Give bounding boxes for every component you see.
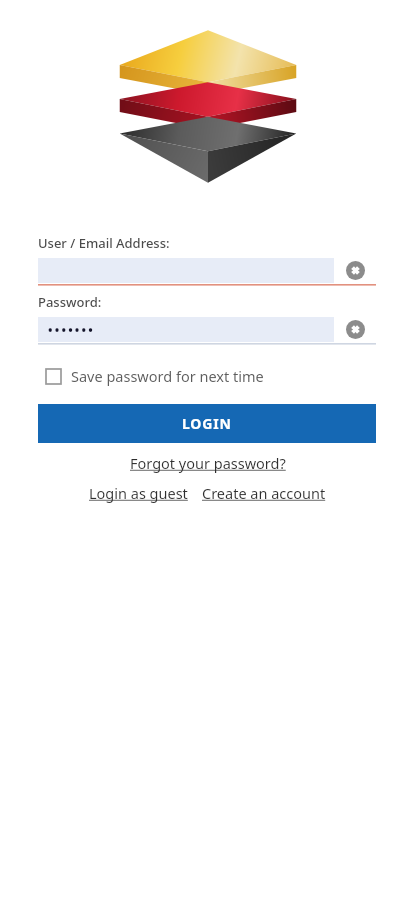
button[interactable]: •••••••	[38, 317, 334, 342]
button[interactable]: Login as guest	[86, 481, 191, 505]
button[interactable]: Clear user or email address	[334, 256, 376, 284]
button[interactable]: Clear password	[334, 315, 376, 343]
staticText: Save password for next time	[71, 366, 264, 386]
button[interactable]: Forgot your password?	[127, 451, 289, 475]
staticText: Create an account	[202, 483, 326, 503]
staticText: Login as guest	[89, 483, 188, 503]
staticText: Password:	[38, 293, 102, 311]
staticText: Forgot your password?	[130, 453, 286, 473]
button[interactable]: Create an account	[199, 481, 329, 505]
staticText: User / Email Address:	[38, 234, 170, 252]
button[interactable]: Save password for next time	[42, 362, 268, 390]
staticText: •••••••	[48, 322, 95, 338]
button[interactable]: LOGIN	[38, 404, 376, 443]
staticText: LOGIN	[182, 414, 232, 433]
